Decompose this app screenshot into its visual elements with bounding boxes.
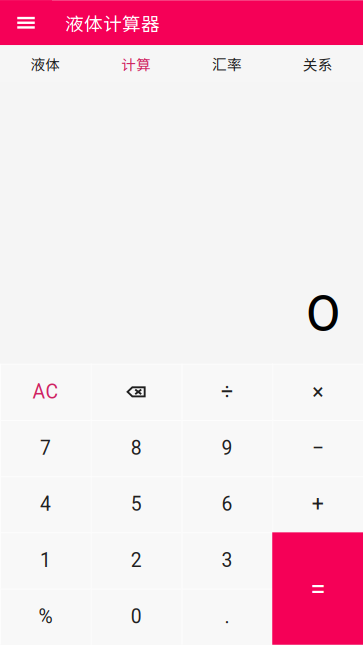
button[interactable]: 3: [181, 532, 272, 589]
button[interactable]: 6: [181, 476, 272, 532]
staticText: =: [310, 572, 325, 605]
staticText: +: [312, 492, 324, 517]
button[interactable]: 1: [0, 532, 91, 589]
button[interactable]: 0: [91, 589, 182, 645]
staticText: 7: [40, 437, 51, 459]
button[interactable]: 8: [91, 420, 182, 476]
button[interactable]: 关系: [272, 45, 363, 82]
staticText: −: [312, 436, 324, 461]
staticText: 1: [40, 549, 51, 572]
staticText: 4: [40, 493, 51, 516]
staticText: %: [38, 605, 52, 628]
button[interactable]: .: [181, 589, 272, 645]
button[interactable]: 5: [91, 476, 182, 532]
button[interactable]: 7: [0, 420, 91, 476]
staticText: 8: [131, 437, 142, 459]
staticText: ÷: [221, 379, 233, 404]
button[interactable]: 计算: [91, 45, 182, 82]
staticText: 计算: [121, 53, 151, 74]
button[interactable]: AC: [0, 364, 91, 420]
button[interactable]: Delete: [91, 364, 182, 420]
button[interactable]: +: [272, 476, 363, 532]
button[interactable]: 9: [181, 420, 272, 476]
button[interactable]: %: [0, 589, 91, 645]
button[interactable]: −: [272, 420, 363, 476]
staticText: 液体计算器: [65, 9, 160, 36]
staticText: 0: [131, 605, 142, 628]
button[interactable]: 液体: [0, 45, 91, 82]
button[interactable]: 汇率: [181, 45, 272, 82]
button[interactable]: =: [272, 532, 363, 645]
staticText: 3: [221, 549, 232, 572]
staticText: 6: [221, 493, 232, 516]
button[interactable]: 4: [0, 476, 91, 532]
staticText: ×: [312, 379, 323, 404]
staticText: .: [224, 605, 229, 628]
button[interactable]: ×: [272, 364, 363, 420]
staticText: 汇率: [212, 53, 242, 74]
staticText: 关系: [303, 53, 333, 74]
staticText: 9: [221, 437, 232, 459]
staticText: 0: [306, 283, 340, 343]
staticText: AC: [32, 380, 58, 403]
staticText: 液体: [30, 53, 60, 74]
button[interactable]: ÷: [181, 364, 272, 420]
staticText: 5: [131, 493, 142, 516]
button[interactable]: Menu: [0, 0, 52, 45]
button[interactable]: 2: [91, 532, 182, 589]
staticText: 2: [131, 549, 142, 572]
